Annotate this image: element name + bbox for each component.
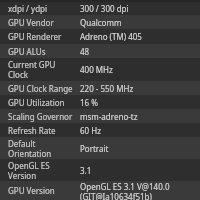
button[interactable]: GPU Clock Range [0, 81, 200, 95]
button[interactable]: Refresh Rate [0, 123, 200, 137]
staticText: 60 Hz [80, 125, 101, 136]
staticText: Adreno (TM) 405 [80, 31, 142, 42]
staticText: GPU Version [8, 185, 55, 196]
staticText: 220 - 550 MHz [80, 83, 134, 94]
staticText: Current GPU Clock [8, 59, 56, 80]
button[interactable]: Current GPU Clock [0, 58, 200, 81]
staticText: msm-adreno-tz [80, 111, 138, 122]
staticText: Portrait [80, 143, 109, 154]
button[interactable]: GPU Renderer [0, 29, 200, 44]
staticText: GPU Clock Range [8, 83, 73, 94]
button[interactable]: GPU Version [0, 181, 200, 200]
staticText: GPU ALUs [8, 46, 46, 57]
button[interactable]: OpenGL ES Version [0, 159, 200, 181]
button[interactable]: xdpi / ydpi [0, 2, 200, 15]
staticText: OpenGL ES Version [8, 160, 50, 181]
button[interactable]: Scaling Governor [0, 109, 200, 123]
button[interactable]: Default Orientation [0, 137, 200, 159]
staticText: 400 MHz [80, 64, 113, 75]
staticText: xdpi / ydpi [8, 3, 48, 14]
staticText: Qualcomm [80, 17, 122, 28]
staticText: 300 / 300 dpi [80, 3, 129, 14]
staticText: Refresh Rate [8, 125, 56, 136]
button[interactable]: GPU Vendor [0, 15, 200, 29]
staticText: 3.1 [80, 165, 92, 176]
button[interactable]: GPU Utilization [0, 95, 200, 109]
button[interactable]: GPU ALUs [0, 44, 200, 58]
staticText: Default Orientation [8, 138, 52, 159]
staticText: 16 % [80, 97, 98, 108]
staticText: GPU Renderer [8, 31, 62, 42]
staticText: GPU Utilization [8, 97, 65, 108]
staticText: OpenGL ES 3.1 V@140.0 (GIT@Ia10634f51b) [80, 181, 170, 200]
staticText: GPU Vendor [8, 17, 54, 28]
staticText: Scaling Governor [8, 111, 73, 122]
staticText: 48 [80, 46, 90, 57]
